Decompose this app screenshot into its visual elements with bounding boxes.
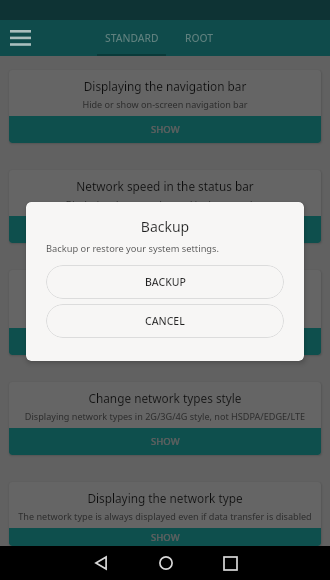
staticText: BACKUP (145, 275, 186, 289)
staticText: Displaying the navigation bar (9, 78, 321, 94)
button[interactable]: Home (149, 546, 183, 580)
button[interactable]: SHOW (9, 216, 321, 243)
staticText: Displaying network types in 2G/3G/4G sty… (11, 410, 319, 422)
staticText: SHOW (151, 435, 180, 448)
button[interactable]: BACKUP (46, 265, 284, 299)
staticText: Network speed in the status bar (9, 178, 321, 194)
staticText: SHOW (151, 123, 180, 136)
staticText: CANCEL (145, 314, 185, 328)
staticText: SHOW (151, 335, 180, 348)
button[interactable]: CANCEL (46, 304, 284, 338)
button[interactable]: SHOW (9, 116, 321, 143)
staticText: Backup (26, 217, 304, 236)
staticText: Update interval (9, 278, 321, 294)
button[interactable]: Open navigation menu (4, 22, 36, 54)
button[interactable]: STANDARD (97, 20, 166, 56)
staticText: Displaying the network speed in the stat… (11, 198, 319, 210)
staticText: SHOW (151, 531, 180, 544)
staticText: Backup or restore your system settings. (46, 242, 220, 255)
staticText: STANDARD (105, 31, 159, 45)
staticText: How often the speed indicator refreshes … (11, 298, 319, 322)
button[interactable]: SHOW (9, 428, 321, 455)
staticText: Displaying the network type (9, 490, 321, 506)
staticText: The network type is always displayed eve… (11, 510, 319, 522)
staticText: ROOT (185, 31, 214, 45)
button[interactable]: Recent apps (213, 546, 247, 580)
staticText: Hide or show on-screen navigation bar (11, 98, 319, 110)
staticText: SHOW (151, 223, 180, 236)
button[interactable]: Back (84, 546, 118, 580)
button[interactable]: SHOW (9, 528, 321, 546)
staticText: Change network types style (9, 390, 321, 406)
button[interactable]: SHOW (9, 328, 321, 355)
button[interactable]: ROOT (166, 20, 232, 56)
